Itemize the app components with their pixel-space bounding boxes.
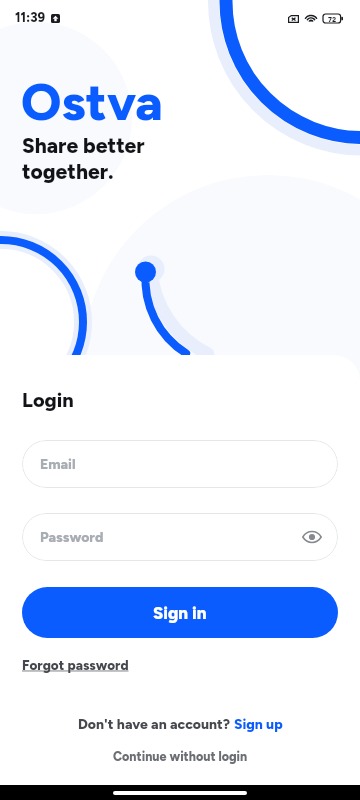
- button[interactable]: Continue without login: [22, 749, 338, 764]
- staticText: Password: [40, 529, 104, 546]
- staticText: Don't have an account?: [78, 716, 234, 733]
- button[interactable]: Forgot password: [22, 657, 129, 673]
- button[interactable]: Sign up: [234, 716, 283, 733]
- button[interactable]: Password: [22, 513, 338, 561]
- staticText: Share better together.: [22, 133, 145, 184]
- button[interactable]: Show password: [300, 525, 324, 549]
- staticText: 72: [328, 15, 337, 23]
- staticText: 11:39: [15, 10, 46, 26]
- staticText: Login: [22, 388, 74, 412]
- staticText: Email: [40, 456, 76, 473]
- staticText: Sign in: [153, 603, 207, 623]
- button[interactable]: Sign in: [22, 587, 338, 638]
- button[interactable]: Email: [22, 440, 338, 488]
- staticText: Sign up: [234, 716, 283, 733]
- staticText: Forgot password: [22, 657, 129, 673]
- staticText: Ostva: [21, 72, 163, 133]
- staticText: Continue without login: [113, 749, 248, 764]
